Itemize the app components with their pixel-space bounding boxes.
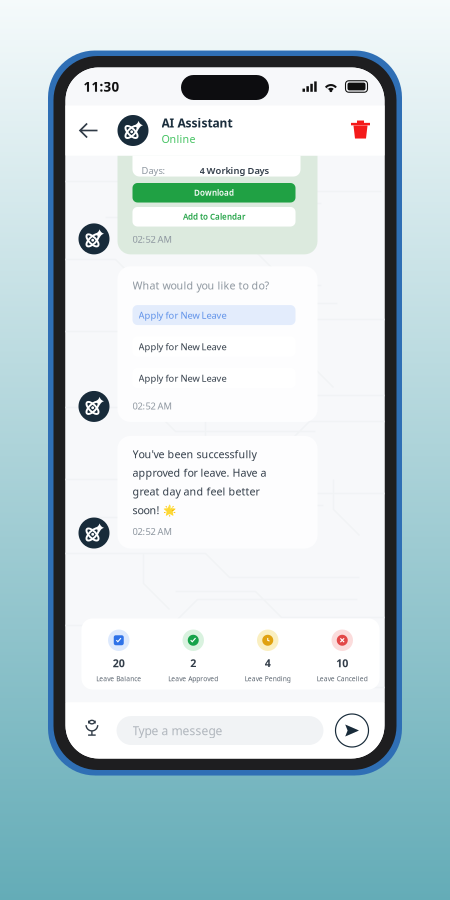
staticText: AI Assistant — [161, 115, 232, 131]
staticText: Apply for New Leave — [138, 372, 226, 384]
staticText: 2 — [190, 656, 196, 670]
button[interactable]: Voice input — [80, 715, 104, 745]
staticText: 02:52 AM — [132, 233, 171, 245]
staticText: You've been successfully approved for le… — [132, 447, 266, 517]
staticText: 10 — [336, 656, 348, 670]
button[interactable]: Add to Calendar — [132, 207, 295, 226]
staticText: 4 — [265, 656, 271, 670]
staticText: 02:52 AM — [132, 400, 171, 412]
staticText: Leave Pending — [245, 674, 291, 683]
button[interactable]: Apply for New Leave — [132, 337, 295, 357]
button[interactable]: Send — [334, 713, 369, 748]
staticText: Online — [161, 132, 195, 146]
button[interactable]: Delete conversation — [347, 115, 373, 145]
staticText: 02:52 AM — [132, 525, 171, 537]
staticText: Apply for New Leave — [138, 340, 226, 353]
staticText: Leave Balance — [96, 674, 141, 683]
button[interactable]: 4 — [230, 618, 305, 689]
staticText: What would you like to do? — [132, 278, 269, 293]
staticText: Add to Calendar — [183, 211, 245, 222]
staticText: 4 Working Days — [199, 164, 269, 176]
staticText: 11:30 — [83, 78, 119, 95]
button[interactable]: Back — [73, 113, 105, 147]
staticText: 20 — [113, 656, 125, 670]
staticText: Download — [194, 187, 234, 198]
button[interactable]: Apply for New Leave — [132, 368, 295, 388]
button[interactable]: Download — [132, 183, 295, 202]
button[interactable]: 2 — [156, 618, 230, 689]
staticText: Type a messege — [132, 722, 222, 738]
staticText: Apply for New Leave — [138, 309, 226, 321]
button[interactable]: Apply for New Leave — [132, 305, 295, 325]
staticText: Days: — [141, 164, 165, 176]
button[interactable]: 20 — [81, 618, 156, 689]
staticText: Leave Cancelled — [317, 674, 368, 683]
button[interactable]: 10 — [305, 618, 379, 689]
staticText: Leave Approved — [168, 674, 218, 683]
